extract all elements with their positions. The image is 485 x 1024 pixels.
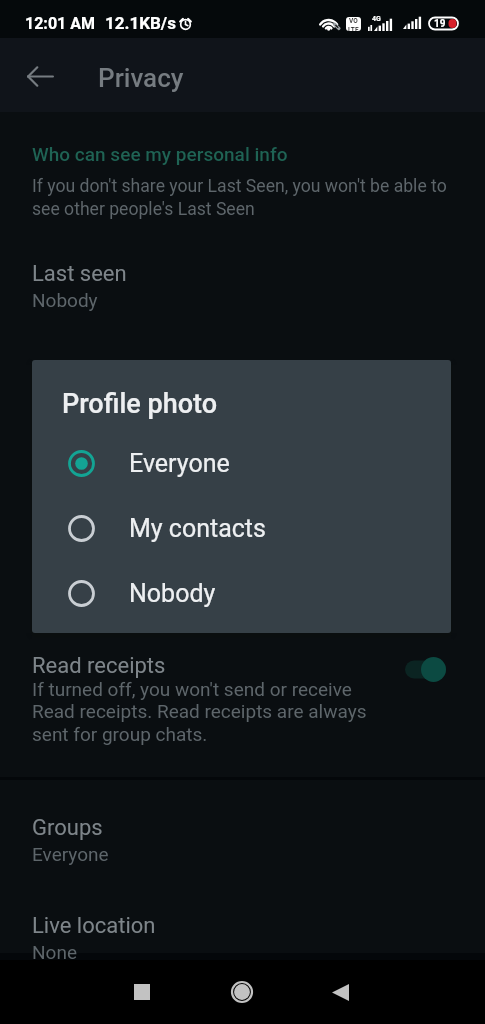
staticText: 19 [434,18,446,30]
staticText: Who can see my personal info [32,143,288,165]
button[interactable]: Everyone [32,431,451,495]
staticText: Profile photo [62,388,218,420]
button[interactable]: Back [16,52,64,100]
staticText: LTE [348,26,359,31]
button[interactable]: Last seen [0,257,485,321]
staticText: Nobody [32,289,98,311]
staticText: Privacy [98,63,184,93]
button[interactable]: My contacts [32,496,451,560]
button[interactable]: Home [213,963,271,1021]
button[interactable]: Nobody [32,561,451,625]
staticText: My contacts [32,581,137,603]
staticText: Groups [32,815,103,841]
staticText: Everyone [32,843,109,865]
staticText: 12:01 AM [25,14,96,33]
button[interactable]: Groups [0,811,485,875]
staticText: Last seen [32,261,127,287]
staticText: Profile photo [32,358,157,384]
button[interactable]: Recent apps [113,963,171,1021]
button[interactable]: About [0,452,485,516]
staticText: Everyone [32,386,109,408]
staticText: About [32,456,91,482]
staticText: VO [349,17,358,25]
staticText: Everyone [129,449,230,478]
staticText: Nobody [129,579,216,608]
staticText: Read receipts [32,653,166,679]
button[interactable]: Live location [0,909,485,973]
staticText: My contacts [129,514,266,543]
button[interactable]: Status [0,549,485,613]
staticText: If you don't share your Last Seen, you w… [32,176,464,220]
staticText: 4G [372,15,381,23]
button[interactable]: Profile photo [0,354,485,418]
staticText: If turned off, you won't send or receive… [32,678,382,746]
staticText: Live location [32,913,156,939]
button[interactable]: Read receipts [0,649,485,757]
button[interactable]: Back [311,963,369,1021]
staticText: None [32,941,77,963]
staticText: 12.1KB/s [105,13,176,33]
